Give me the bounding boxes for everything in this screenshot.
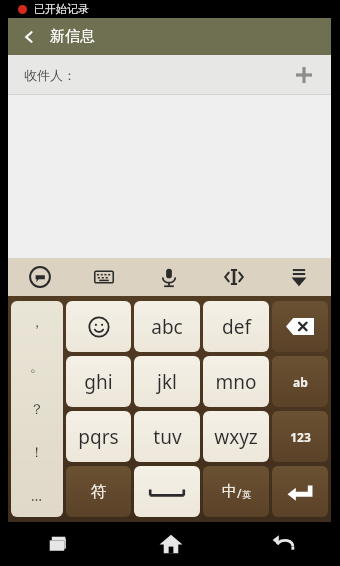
staticText: … [31, 486, 43, 505]
staticText: 符 [91, 482, 107, 502]
button[interactable]: Voice input [136, 258, 201, 296]
staticText: wxyz [214, 424, 258, 450]
staticText: ！ [30, 444, 44, 462]
staticText: / [237, 485, 242, 501]
button[interactable]: 。 [11, 345, 63, 388]
staticText: 收件人： [24, 67, 76, 83]
staticText: 已开始记录 [34, 2, 89, 16]
staticText: ghi [84, 369, 113, 395]
button[interactable]: Enter [272, 466, 328, 517]
button[interactable]: tuv [134, 411, 200, 462]
button[interactable]: Add recipient [289, 60, 319, 90]
staticText: abc [151, 314, 183, 340]
staticText: 。 [30, 358, 44, 376]
button[interactable]: pqrs [66, 411, 131, 462]
button[interactable]: Space [134, 466, 200, 517]
staticText: tuv [153, 424, 182, 450]
other: Back [22, 30, 36, 44]
staticText: 中 [222, 482, 237, 501]
button[interactable]: Keyboard layout [72, 258, 136, 296]
button[interactable]: ？ [11, 388, 63, 431]
button[interactable]: Back [8, 18, 331, 55]
button[interactable]: mno [203, 356, 269, 407]
button[interactable]: def [203, 301, 269, 352]
button[interactable]: 收件人： [8, 55, 331, 95]
button[interactable]: 中 [203, 466, 269, 517]
button[interactable]: abc [134, 301, 200, 352]
button[interactable]: 符 [66, 466, 131, 517]
button[interactable]: Hide keyboard [266, 258, 331, 296]
button[interactable]: 123 [272, 411, 328, 462]
staticText: jkl [157, 369, 177, 395]
button[interactable]: Voice input settings [8, 258, 72, 296]
staticText: 新信息 [50, 27, 95, 46]
staticText: def [222, 314, 251, 340]
button[interactable]: ab [272, 356, 328, 407]
button[interactable]: Back [227, 522, 340, 566]
button[interactable]: Home [114, 522, 227, 566]
button[interactable]: ！ [11, 431, 63, 474]
staticText: ？ [30, 401, 44, 419]
staticText: 英 [242, 489, 251, 500]
staticText: pqrs [78, 424, 119, 450]
button[interactable]: Emoji [66, 301, 131, 352]
staticText: ab [293, 374, 308, 390]
button[interactable]: ， [11, 301, 63, 345]
button[interactable]: ghi [66, 356, 131, 407]
button[interactable]: Recents [0, 522, 114, 566]
button[interactable]: Backspace [272, 301, 328, 352]
staticText: ， [30, 314, 44, 332]
button[interactable]: Move cursor [201, 258, 266, 296]
staticText: 123 [290, 429, 311, 445]
button[interactable]: … [11, 474, 63, 517]
button[interactable]: wxyz [203, 411, 269, 462]
staticText: mno [215, 369, 257, 395]
button[interactable]: jkl [134, 356, 200, 407]
